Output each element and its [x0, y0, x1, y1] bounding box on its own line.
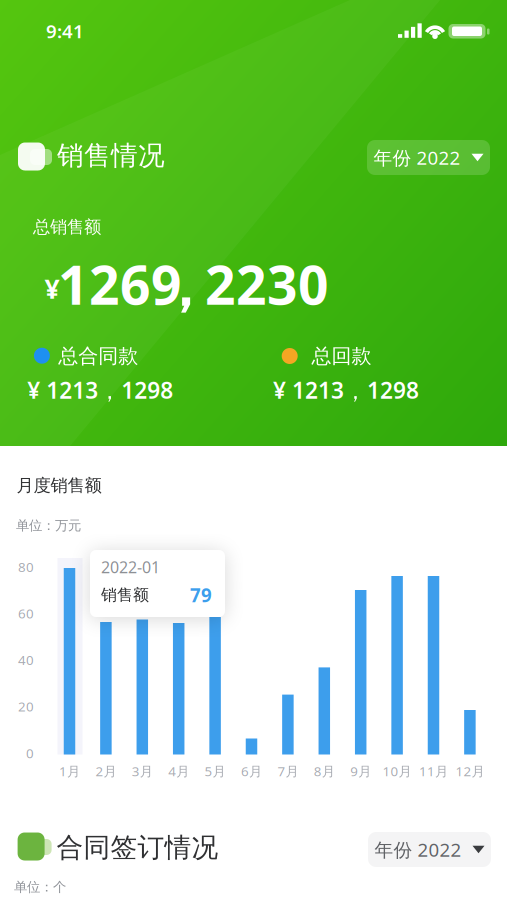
staticText: 0 — [26, 744, 34, 762]
staticText: 年份 2022 — [374, 837, 461, 862]
staticText: 2月 — [95, 762, 116, 780]
staticText: 79 — [190, 583, 212, 607]
button[interactable]: 年份 2022 — [368, 832, 491, 867]
staticText: 单位：个 — [14, 879, 66, 895]
staticText: 总合同款 — [58, 344, 138, 368]
staticText: 1269 — [58, 249, 182, 319]
staticText: ， — [158, 255, 211, 321]
staticText: 销售情况 — [57, 139, 165, 172]
staticText: 9月 — [350, 762, 371, 780]
staticText: ¥ 1213，1298 — [273, 375, 419, 405]
staticText: 2230 — [205, 249, 329, 319]
staticText: 7月 — [277, 762, 298, 780]
staticText: 11月 — [419, 762, 448, 780]
staticText: 单位：万元 — [16, 517, 81, 534]
staticText: 5月 — [205, 762, 226, 780]
staticText: 4月 — [168, 762, 189, 780]
staticText: 10月 — [383, 762, 412, 780]
staticText: 总回款 — [311, 344, 371, 368]
button[interactable]: 年份 2022 — [367, 140, 490, 175]
staticText: ¥ — [44, 271, 59, 306]
staticText: 8月 — [314, 762, 335, 780]
staticText: 40 — [18, 651, 34, 669]
staticText: 9:41 — [46, 19, 84, 43]
staticText: 6月 — [241, 762, 262, 780]
staticText: 12月 — [455, 762, 484, 780]
staticText: ¥ 1213，1298 — [27, 375, 173, 405]
staticText: 1月 — [59, 762, 80, 780]
staticText: 总销售额 — [33, 216, 101, 238]
staticText: 2022-01 — [101, 556, 160, 578]
staticText: 20 — [18, 697, 34, 715]
staticText: 60 — [18, 604, 34, 622]
staticText: 月度销售额 — [16, 475, 101, 496]
staticText: 80 — [18, 558, 34, 576]
staticText: 销售额 — [101, 585, 149, 605]
staticText: 合同签订情况 — [57, 831, 219, 864]
staticText: 3月 — [132, 762, 153, 780]
staticText: 年份 2022 — [373, 145, 460, 170]
